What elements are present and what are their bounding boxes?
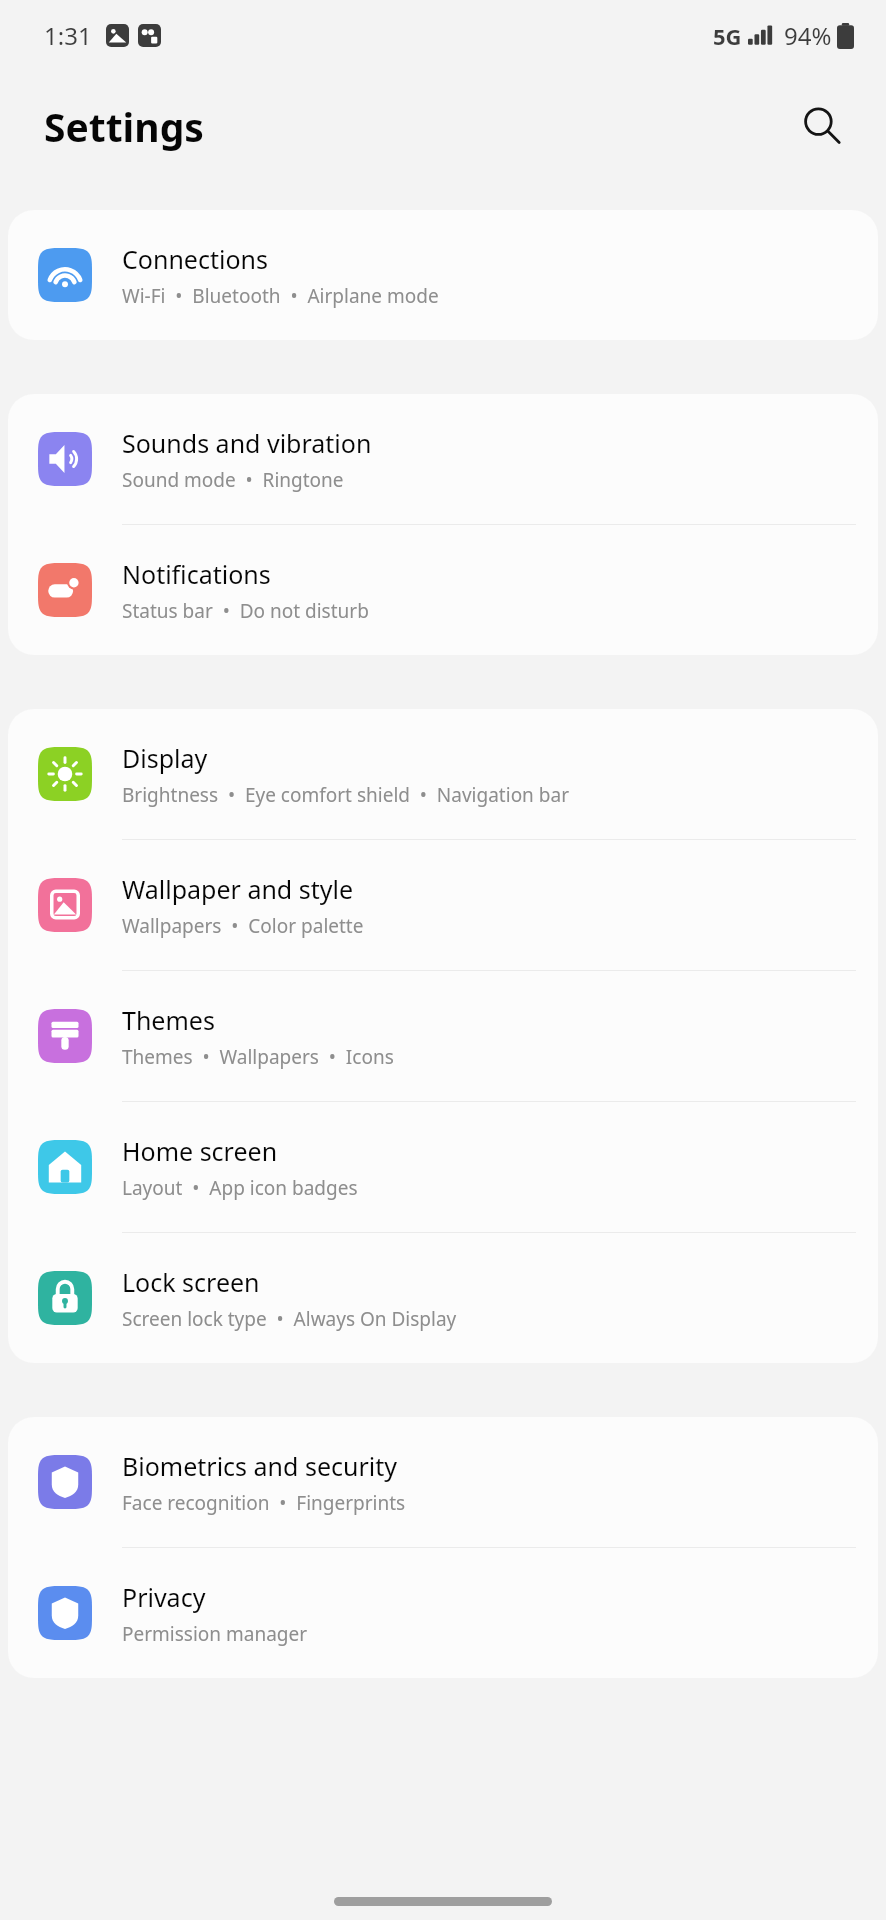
staticText: Permission manager xyxy=(122,1621,308,1647)
staticText: Layout • App icon badges xyxy=(122,1175,358,1201)
button[interactable]: Wallpaper and style xyxy=(8,840,878,970)
staticText: Biometrics and security xyxy=(122,1449,398,1483)
button[interactable]: Privacy xyxy=(8,1548,878,1678)
staticText: Notifications xyxy=(122,557,271,591)
button[interactable]: Themes xyxy=(8,971,878,1101)
staticText: Themes • Wallpapers • Icons xyxy=(122,1044,394,1070)
staticText: Brightness • Eye comfort shield • Naviga… xyxy=(122,782,569,808)
button[interactable]: Search xyxy=(792,96,852,156)
staticText: Wi-Fi • Bluetooth • Airplane mode xyxy=(122,283,439,309)
button[interactable]: Display xyxy=(8,709,878,839)
staticText: Sounds and vibration xyxy=(122,426,372,460)
staticText: Status bar • Do not disturb xyxy=(122,598,369,624)
staticText: 1:31 xyxy=(44,19,92,52)
button[interactable]: Biometrics and security xyxy=(8,1417,878,1547)
staticText: 5G xyxy=(713,21,742,51)
staticText: Privacy xyxy=(122,1580,206,1614)
button[interactable]: Sounds and vibration xyxy=(8,394,878,524)
staticText: Screen lock type • Always On Display xyxy=(122,1306,457,1332)
staticText: Display xyxy=(122,741,208,775)
staticText: Face recognition • Fingerprints xyxy=(122,1490,406,1516)
staticText: Wallpapers • Color palette xyxy=(122,913,364,939)
button[interactable]: Connections xyxy=(8,210,878,340)
staticText: Wallpaper and style xyxy=(122,872,354,906)
staticText: Lock screen xyxy=(122,1265,260,1299)
staticText: Settings xyxy=(44,100,204,153)
button[interactable]: Lock screen xyxy=(8,1233,878,1363)
button[interactable]: Home screen xyxy=(8,1102,878,1232)
staticText: 94% xyxy=(784,19,832,52)
staticText: Sound mode • Ringtone xyxy=(122,467,344,493)
staticText: Home screen xyxy=(122,1134,278,1168)
staticText: Connections xyxy=(122,242,268,276)
staticText: Themes xyxy=(122,1003,215,1037)
button[interactable]: Notifications xyxy=(8,525,878,655)
